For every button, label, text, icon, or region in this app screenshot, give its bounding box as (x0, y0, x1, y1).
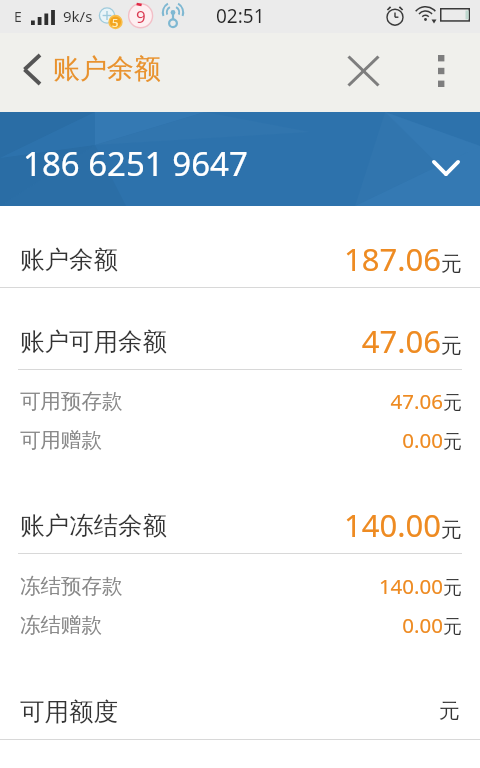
staticText: 47.06元 (361, 320, 462, 362)
button[interactable]: 冻结赠款 (0, 605, 480, 644)
staticText: 0.00元 (402, 611, 462, 639)
staticText: 账户余额 (53, 52, 161, 86)
staticText: 冻结预存款 (20, 573, 123, 599)
staticText: 5 (112, 15, 119, 30)
button[interactable]: Close (333, 39, 393, 103)
staticText: 可用预存款 (20, 388, 123, 414)
staticText: 账户余额 (20, 244, 118, 275)
button[interactable]: Switch account (420, 142, 472, 194)
button[interactable]: More options (414, 39, 468, 103)
staticText: 140.00元 (378, 572, 462, 600)
button[interactable]: 186 6251 9647 (0, 112, 480, 206)
staticText: E (14, 7, 22, 26)
staticText: 187.06元 (344, 238, 462, 280)
staticText: 可用额度 (20, 696, 118, 727)
staticText: 9 (136, 5, 146, 28)
button[interactable]: 冻结预存款 (0, 566, 480, 605)
staticText: 元 (439, 698, 460, 724)
staticText: 140.00元 (344, 504, 462, 546)
button[interactable]: 账户余额 (0, 218, 480, 300)
staticText: 9k/s (63, 6, 93, 26)
staticText: 账户可用余额 (20, 326, 167, 357)
staticText: 02:51 (216, 3, 265, 29)
staticText: 可用赠款 (20, 427, 102, 453)
button[interactable]: 账户冻结余额 (0, 484, 480, 566)
staticText: 47.06元 (390, 387, 462, 415)
button[interactable]: 可用赠款 (0, 420, 480, 459)
button[interactable]: 账户余额 (8, 45, 170, 99)
staticText: 账户冻结余额 (20, 510, 167, 541)
staticText: 186 6251 9647 (23, 141, 248, 186)
button[interactable]: 可用预存款 (0, 381, 480, 420)
staticText: 冻结赠款 (20, 612, 102, 638)
button[interactable]: 可用额度 (0, 670, 480, 752)
staticText: 0.00元 (402, 426, 462, 454)
button[interactable]: 账户可用余额 (0, 300, 480, 382)
